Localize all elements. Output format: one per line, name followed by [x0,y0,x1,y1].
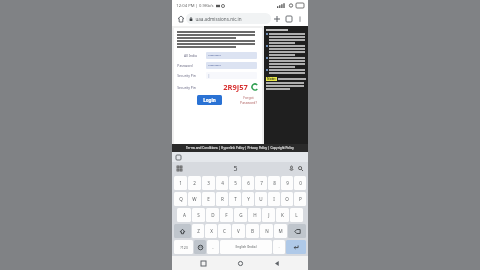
button[interactable]: S [192,208,205,222]
button[interactable]: Tabs [283,13,295,25]
button[interactable]: 5 [229,176,241,190]
button[interactable]: ?123 [174,240,193,254]
button[interactable]: O [281,192,293,206]
staticText: D [211,212,215,218]
staticText: B [251,228,254,234]
button[interactable]: 2 [188,176,201,190]
staticText: L [295,212,298,218]
staticText: Forgot [243,95,254,100]
button[interactable]: E [202,192,215,206]
button[interactable]: More options [295,14,305,24]
button[interactable]: W [188,192,201,206]
button[interactable]: M [274,224,287,238]
button[interactable]: 9 [281,176,293,190]
staticText: 2R9J57 [223,82,248,92]
staticText: 0 [299,180,302,186]
staticText: J [268,212,270,218]
button[interactable]: Backspace [288,224,306,238]
staticText: All India Application Number [177,53,204,58]
button[interactable]: Back [271,257,283,269]
button[interactable]: •••••••••• [206,52,257,59]
button[interactable]: L [290,208,303,222]
button[interactable]: N [260,224,273,238]
staticText: 5 [234,180,237,186]
button[interactable]: Login [197,95,222,105]
staticText: Terms and Conditions | Hyperlink Policy … [186,146,294,150]
staticText: . [278,244,280,250]
button[interactable]: F [220,208,233,222]
button[interactable]: English (India) [220,240,272,254]
button[interactable]: 0 [294,176,306,190]
staticText: H [253,212,257,218]
button[interactable]: Shift [174,224,191,238]
staticText: 12:04 PM | 0.9Kb/s [176,3,214,9]
staticText: Note: [267,77,276,81]
button[interactable]: 3 [202,176,215,190]
button[interactable]: Voice input [287,164,296,173]
staticText: Login [203,97,216,103]
staticText: Password [177,63,193,68]
staticText: 6 [247,180,250,186]
staticText: X [210,228,213,234]
button[interactable]: T [229,192,241,206]
button[interactable]: J [262,208,275,222]
button[interactable]: 6 [242,176,254,190]
button[interactable]: X [205,224,217,238]
button[interactable]: uaa.admissions.nic.in [186,13,271,24]
button[interactable]: . [273,240,285,254]
button[interactable]: 4 [216,176,228,190]
staticText: •••••••••• [208,63,221,68]
staticText: Security Pin [177,85,196,90]
staticText: ?123 [180,245,188,250]
button[interactable]: Z [192,224,204,238]
button[interactable]: 8 [268,176,280,190]
button[interactable]: Home [234,257,246,269]
button[interactable]: 5 [184,162,287,175]
button[interactable]: K [276,208,289,222]
staticText: S [197,212,200,218]
button[interactable]: Y [242,192,254,206]
staticText: T [234,196,237,202]
staticText: P [299,196,302,202]
staticText: English (India) [235,245,257,249]
button[interactable]: B [246,224,259,238]
staticText: U [259,196,263,202]
button[interactable]: C [218,224,231,238]
button[interactable]: U [255,192,267,206]
button[interactable]: 1 [174,176,187,190]
button[interactable]: Refresh captcha [251,83,259,91]
button[interactable]: V [232,224,245,238]
staticText: 4 [221,180,224,186]
button[interactable]: P [294,192,306,206]
button[interactable]: H [248,208,261,222]
button[interactable]: Search [296,164,305,173]
button[interactable]: •••••••••• [206,62,257,69]
button[interactable]: New tab [271,13,283,25]
button[interactable]: , [207,240,219,254]
staticText: , [212,244,214,250]
staticText: G [239,212,243,218]
staticText: M [278,228,283,234]
staticText: V [237,228,240,234]
staticText: Q [179,196,183,202]
staticText: R [221,196,224,202]
button[interactable]: R [216,192,228,206]
button[interactable]: Enter [286,240,306,254]
button[interactable]: Home [175,13,186,24]
staticText: E [207,196,210,202]
button[interactable]: 7 [255,176,267,190]
button[interactable]: | [206,72,257,79]
staticText: 8 [273,180,276,186]
button[interactable]: Toolbar [175,164,184,173]
staticText: K [281,212,284,218]
button[interactable]: I [268,192,280,206]
button[interactable]: G [234,208,247,222]
button[interactable]: Clipboard [176,155,181,160]
button[interactable]: Recents [197,257,209,269]
staticText: A [183,212,186,218]
button[interactable]: Emoji [194,240,206,254]
button[interactable]: A [177,208,191,222]
button[interactable]: D [206,208,219,222]
staticText: Z [197,228,200,234]
button[interactable]: Q [174,192,187,206]
